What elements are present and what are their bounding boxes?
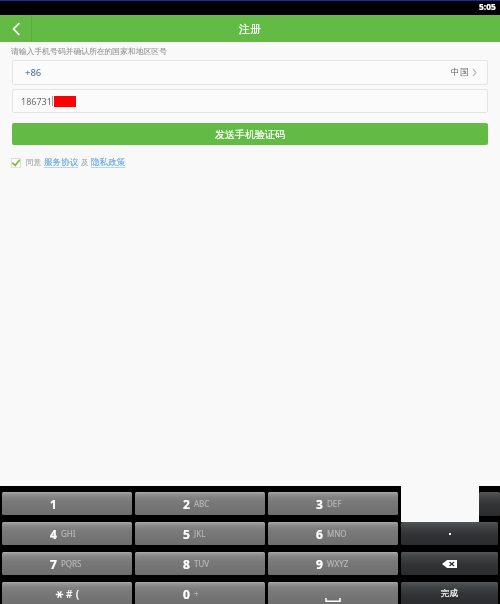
button[interactable]: 隐私政策 <box>91 157 126 168</box>
button[interactable]: Agree checkbox <box>11 158 21 168</box>
button[interactable]: Key <box>479 492 500 516</box>
staticText: PQRS <box>61 558 82 569</box>
button[interactable]: 7 <box>2 552 132 575</box>
staticText: WXYZ <box>327 558 349 569</box>
staticText: 及 <box>81 158 89 168</box>
staticText: 7 <box>50 556 57 572</box>
staticText: 4 <box>50 526 57 542</box>
button[interactable]: 186731 <box>12 89 488 113</box>
staticText: 完成 <box>441 588 458 599</box>
button[interactable]: 完成 <box>401 582 498 604</box>
staticText: GHI <box>61 528 76 539</box>
staticText: TUV <box>194 558 210 569</box>
staticText: 9 <box>316 556 323 572</box>
button[interactable]: 4 <box>2 522 132 545</box>
staticText: 1 <box>50 496 57 512</box>
button[interactable]: 服务协议 <box>44 157 79 168</box>
staticText: JKL <box>194 528 206 539</box>
button[interactable]: 6 <box>268 522 398 545</box>
button[interactable]: 1 <box>2 492 132 515</box>
button[interactable]: Symbols <box>2 582 132 604</box>
staticText: 中国 <box>451 67 469 78</box>
button[interactable]: 5 <box>135 522 265 545</box>
button[interactable]: Backspace <box>401 552 498 575</box>
staticText: DEF <box>327 498 342 509</box>
staticText: 2 <box>183 496 190 512</box>
staticText: 0 <box>183 586 190 602</box>
staticText: 发送手机验证码 <box>215 128 285 141</box>
staticText: 同意 <box>26 158 42 168</box>
button[interactable]: 发送手机验证码 <box>12 123 488 145</box>
staticText: 8 <box>183 556 190 572</box>
staticText: 186731 <box>21 95 52 107</box>
button[interactable]: Space <box>268 582 398 604</box>
staticText: ABC <box>194 498 210 509</box>
button[interactable]: 2 <box>135 492 265 515</box>
staticText: 6 <box>316 526 323 542</box>
staticText: MNO <box>327 528 347 539</box>
button[interactable]: Back <box>0 15 31 42</box>
button[interactable]: 0 <box>135 582 265 604</box>
staticText: 注册 <box>239 22 261 36</box>
staticText: + <box>194 588 199 599</box>
staticText: # <box>66 587 73 601</box>
staticText: 请输入手机号码并确认所在的国家和地区区号 <box>11 46 167 56</box>
button[interactable]: 9 <box>268 552 398 575</box>
staticText: 5:05 <box>479 1 496 12</box>
staticText: 5 <box>183 526 190 542</box>
button[interactable]: Period <box>401 522 498 545</box>
staticText: ( <box>76 587 79 601</box>
button[interactable]: 3 <box>268 492 398 515</box>
button[interactable]: +86 <box>12 60 488 85</box>
staticText: 3 <box>316 496 323 512</box>
button[interactable]: 8 <box>135 552 265 575</box>
staticText: +86 <box>25 66 42 79</box>
